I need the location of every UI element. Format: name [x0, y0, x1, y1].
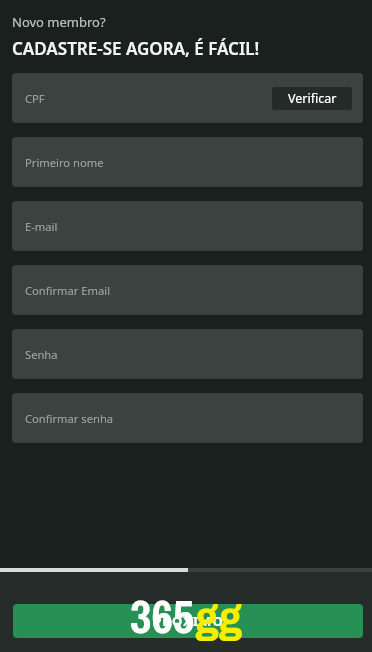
button[interactable]: E-mail [12, 201, 363, 251]
staticText: Verificar [288, 90, 337, 107]
staticText: Confirmar senha [25, 411, 114, 426]
button[interactable]: Verificar [272, 87, 352, 110]
staticText: gg [195, 584, 243, 647]
button[interactable]: Confirmar senha [12, 393, 363, 443]
button[interactable]: Senha [12, 329, 363, 379]
button[interactable]: Primeiro nome [12, 137, 363, 187]
staticText: Novo membro? [12, 13, 106, 31]
staticText: Confirmar Email [25, 283, 111, 298]
staticText: CADASTRE-SE AGORA, É FÁCIL! [12, 37, 260, 60]
staticText: Primeiro nome [25, 155, 104, 170]
button[interactable]: Confirmar Email [12, 265, 363, 315]
button[interactable]: PRÓXIMO [13, 604, 363, 638]
button[interactable]: CPF [12, 73, 363, 123]
staticText: E-mail [25, 219, 58, 234]
staticText: PRÓXIMO [153, 612, 224, 630]
staticText: 365 [130, 584, 195, 647]
staticText: Senha [25, 347, 58, 362]
staticText: CPF [25, 91, 45, 106]
